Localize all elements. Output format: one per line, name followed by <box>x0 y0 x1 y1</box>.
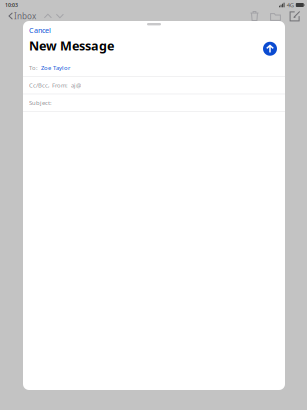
staticText: Zoe Taylor <box>41 64 70 72</box>
button[interactable]: Delete <box>244 10 265 22</box>
staticText: Cancel <box>29 25 51 35</box>
button[interactable]: Cancel <box>29 25 51 35</box>
staticText: Cc/Bcc, From: <box>29 81 68 89</box>
button[interactable]: Compose <box>286 10 304 22</box>
button[interactable]: Next message <box>54 11 66 21</box>
staticText: To: <box>29 64 38 72</box>
button[interactable]: Send <box>265 39 279 53</box>
staticText: New Message <box>29 37 114 54</box>
staticText: 4G <box>287 1 294 9</box>
staticText: Subject: <box>29 99 52 107</box>
button[interactable]: Inbox <box>9 10 36 22</box>
staticText: aj@ <box>71 81 81 89</box>
staticText: 10:03 <box>5 1 18 9</box>
button[interactable]: Previous message <box>42 11 54 21</box>
staticText: Inbox <box>14 10 36 22</box>
button[interactable]: Move to folder <box>265 10 286 22</box>
